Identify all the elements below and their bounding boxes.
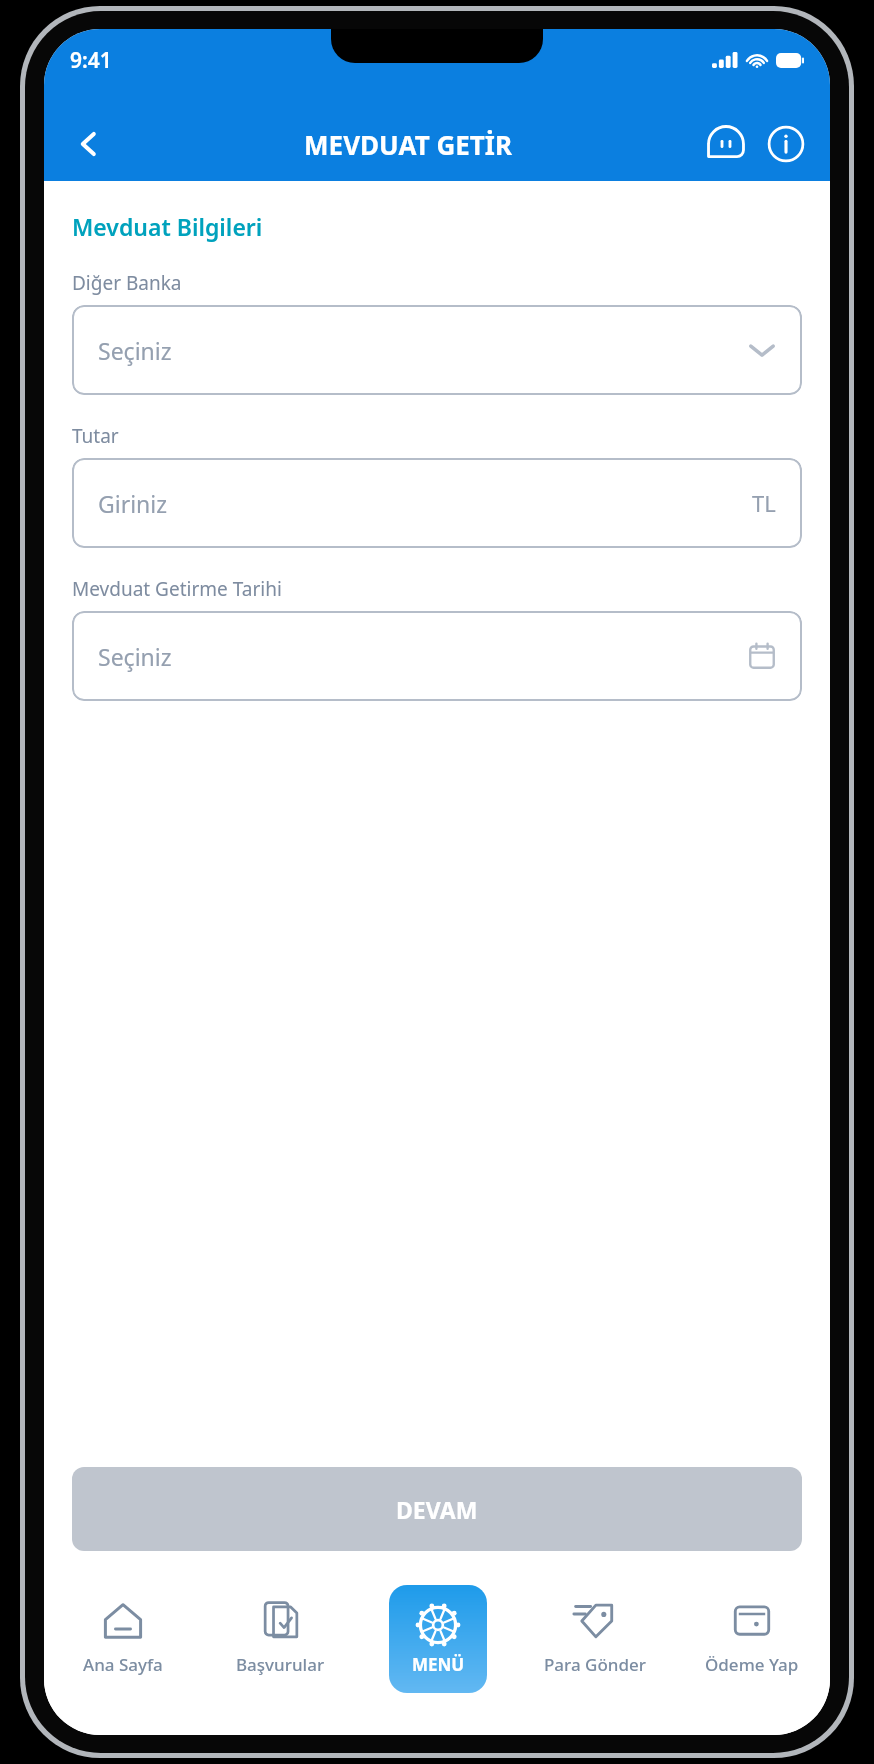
button[interactable]: Back (62, 117, 116, 171)
staticText: Ana Sayfa (83, 1653, 163, 1676)
staticText: MENÜ (412, 1653, 465, 1676)
staticText: Seçiniz (98, 335, 172, 366)
button[interactable]: Seçiniz (72, 611, 802, 701)
button[interactable]: Info (760, 118, 812, 170)
button[interactable]: Seçiniz (72, 305, 802, 395)
staticText: MEVDUAT GETİR (304, 127, 512, 162)
staticText: Seçiniz (98, 641, 172, 672)
staticText: Tutar (72, 423, 119, 449)
button[interactable]: Ödeme Yap (673, 1585, 830, 1676)
staticText: 9:41 (70, 46, 112, 75)
button[interactable]: MENÜ (389, 1585, 487, 1693)
button[interactable]: Para Gönder (516, 1585, 673, 1676)
staticText: Mevduat Getirme Tarihi (72, 576, 282, 602)
staticText: DEVAM (396, 1494, 478, 1525)
button[interactable]: Giriniz (72, 458, 802, 548)
button[interactable]: Başvurular (202, 1585, 359, 1676)
button[interactable]: Chat (700, 118, 752, 170)
staticText: Başvurular (236, 1653, 325, 1676)
button[interactable]: DEVAM (72, 1467, 802, 1551)
staticText: Para Gönder (544, 1653, 646, 1676)
staticText: TL (752, 488, 776, 518)
button[interactable]: Ana Sayfa (44, 1585, 202, 1676)
staticText: Mevduat Bilgileri (72, 211, 263, 242)
staticText: Ödeme Yap (705, 1653, 799, 1676)
staticText: Giriniz (98, 488, 168, 519)
staticText: Diğer Banka (72, 270, 182, 296)
